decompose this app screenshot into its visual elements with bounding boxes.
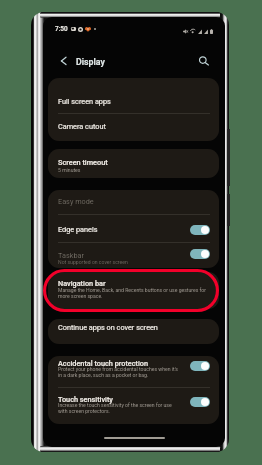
button[interactable]: Toggle <box>190 249 210 259</box>
staticText: Not supported on cover screen <box>58 259 128 265</box>
staticText: Edge panels <box>58 225 98 234</box>
button[interactable]: Toggle <box>190 225 210 235</box>
button[interactable]: Toggle <box>190 397 210 407</box>
button[interactable] <box>48 319 219 344</box>
staticText: Continue apps on cover screen <box>58 323 158 332</box>
staticText: Manage the Home, Back, and Recents butto… <box>58 287 206 299</box>
staticText: Increase the touch sensitivity of the sc… <box>58 402 172 414</box>
staticText: Protect your phone from accidental touch… <box>58 366 178 378</box>
button[interactable] <box>48 356 219 424</box>
staticText: 5 minutes <box>58 167 81 173</box>
button[interactable]: Search <box>195 50 212 67</box>
staticText: Camera cutout <box>58 122 106 131</box>
button[interactable] <box>48 272 219 309</box>
staticText: Full screen apps <box>58 97 111 106</box>
staticText: Navigation bar <box>58 279 106 288</box>
button[interactable] <box>48 78 219 141</box>
button[interactable] <box>48 149 219 178</box>
staticText: Taskbar <box>58 251 84 260</box>
button[interactable] <box>48 190 219 268</box>
staticText: Accidental touch protection <box>58 359 149 368</box>
button[interactable]: Toggle <box>190 361 210 371</box>
staticText: Screen timeout <box>58 158 108 167</box>
staticText: 7:50 <box>55 25 68 33</box>
staticText: Display <box>76 57 105 67</box>
button[interactable]: Navigate up <box>53 50 70 66</box>
staticText: Touch sensitivity <box>58 395 113 404</box>
staticText: Easy mode <box>58 197 94 206</box>
